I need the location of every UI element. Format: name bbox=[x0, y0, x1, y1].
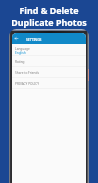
button[interactable]: Language bbox=[12, 44, 86, 56]
staticText: Duplicate Photos bbox=[11, 16, 87, 28]
staticText: Find & Delete bbox=[19, 4, 79, 16]
staticText: English bbox=[15, 51, 26, 55]
button[interactable]: Back bbox=[12, 33, 86, 44]
staticText: Share to Friends bbox=[15, 71, 39, 75]
button[interactable]: PRIVACY POLICY bbox=[12, 78, 86, 89]
staticText: PRIVACY POLICY bbox=[15, 82, 40, 86]
button[interactable]: Rating bbox=[12, 56, 86, 67]
staticText: SETTINGS bbox=[26, 37, 42, 41]
staticText: Rating bbox=[15, 60, 25, 64]
other: Back bbox=[15, 37, 18, 40]
button[interactable]: Share to Friends bbox=[12, 67, 86, 78]
staticText: Language bbox=[15, 47, 30, 51]
